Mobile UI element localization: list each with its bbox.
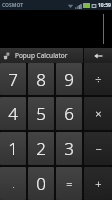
button[interactable]: 0	[28, 167, 54, 200]
button[interactable]	[0, 10, 112, 48]
button[interactable]: 2	[28, 132, 54, 165]
button[interactable]: ÷	[84, 63, 112, 95]
staticText: 8	[36, 68, 46, 91]
staticText: .	[12, 178, 15, 190]
button[interactable]: Backspace	[84, 48, 112, 63]
button[interactable]: +	[84, 167, 112, 200]
button[interactable]: −	[84, 132, 112, 165]
button[interactable]: 7	[0, 63, 26, 95]
button[interactable]: 3	[56, 132, 82, 165]
staticText: −	[95, 141, 102, 156]
staticText: ÷	[95, 72, 102, 87]
staticText: 2	[36, 137, 46, 160]
staticText: +	[95, 176, 102, 191]
staticText: Popup Calculator	[15, 51, 68, 60]
staticText: 1	[8, 137, 18, 160]
button[interactable]: 4	[0, 97, 26, 130]
staticText: 9	[64, 68, 74, 91]
button[interactable]: 6	[56, 97, 82, 130]
staticText: ×	[95, 106, 102, 121]
staticText: =	[66, 176, 73, 191]
button[interactable]: 9	[56, 63, 82, 95]
button[interactable]: =	[56, 167, 82, 200]
staticText: 4	[8, 102, 18, 125]
button[interactable]: ×	[84, 97, 112, 130]
staticText: 6	[64, 102, 74, 125]
button[interactable]: 5	[28, 97, 54, 130]
staticText: COSMOT	[2, 2, 24, 9]
staticText: 5	[36, 102, 46, 125]
staticText: 3	[64, 137, 74, 160]
button[interactable]: 1	[0, 132, 26, 165]
staticText: 10:59	[98, 2, 111, 9]
staticText: 7	[8, 68, 18, 91]
staticText: 0	[36, 172, 46, 195]
button[interactable]: 8	[28, 63, 54, 95]
button[interactable]: .	[0, 167, 26, 200]
button[interactable]: Popup Calculator	[0, 48, 83, 63]
